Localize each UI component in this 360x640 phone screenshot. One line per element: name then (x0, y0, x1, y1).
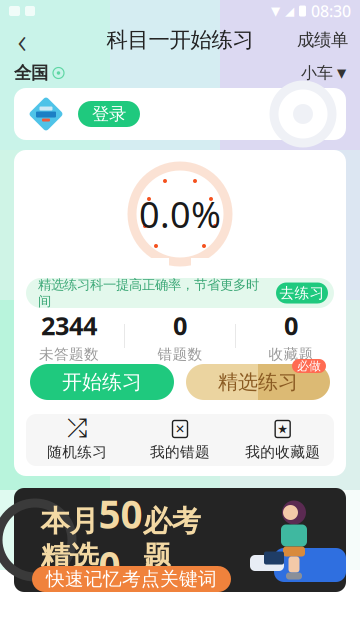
staticText: 全国 (14, 62, 48, 84)
staticText: 500 (98, 488, 142, 591)
button[interactable]: 开始练习 (30, 364, 174, 400)
staticText: 开始练习 (62, 370, 142, 394)
staticText: 成绩单 (297, 29, 348, 51)
button[interactable]: 精选练习科一提高正确率，节省更多时间 (26, 278, 334, 308)
button[interactable]: ★ (231, 414, 334, 466)
staticText: 错题数 (157, 345, 202, 363)
button[interactable]: 精选练习 (186, 364, 330, 400)
staticText: ★ (277, 422, 288, 436)
staticText: 精选练习 (218, 370, 298, 394)
staticText: 我的错题 (150, 443, 210, 461)
button[interactable]: 返回 (0, 22, 44, 58)
staticText: 科目一开始练习 (106, 27, 253, 53)
staticText: 登录 (92, 103, 126, 125)
staticText: 快速记忆考点关键词 (46, 568, 217, 590)
staticText: 0 (284, 309, 298, 342)
staticText: 收藏题 (268, 345, 313, 363)
staticText: 去练习 (279, 284, 324, 302)
button[interactable]: 全国 (0, 56, 65, 90)
staticText: 随机练习 (47, 443, 107, 461)
button[interactable]: 成绩单 (285, 22, 360, 58)
staticText: ✕ (175, 422, 185, 436)
staticText: 本月精选 (40, 503, 98, 575)
button[interactable]: ⤮ (26, 414, 129, 466)
staticText: 0.0% (139, 190, 221, 238)
staticText: 小车 (301, 63, 333, 83)
staticText: 必考题 (142, 503, 200, 575)
staticText: ▼ (337, 66, 346, 80)
button[interactable]: ✕ (129, 414, 231, 466)
staticText: ‹ (17, 17, 26, 63)
staticText: ⤮ (67, 417, 87, 441)
staticText: 0 (173, 309, 187, 342)
staticText: 我的收藏题 (245, 443, 320, 461)
staticText: 2344 (41, 309, 97, 342)
staticText: 必做 (297, 359, 321, 373)
staticText: 08:30 (311, 0, 351, 22)
button[interactable]: 本月精选500必考题 (14, 488, 346, 592)
button[interactable]: 小车 (301, 57, 360, 89)
staticText: 未答题数 (39, 345, 99, 363)
staticText: ▼ (271, 4, 280, 18)
staticText: ◢ (285, 4, 294, 18)
staticText: 精选练习科一提高正确率，节省更多时间 (38, 277, 259, 309)
button[interactable]: 登录 (78, 101, 140, 127)
